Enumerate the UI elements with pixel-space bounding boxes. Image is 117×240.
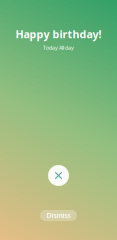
staticText: Happy birthday! xyxy=(15,27,101,41)
staticText: Today All day xyxy=(43,44,74,51)
button[interactable]: Dismiss xyxy=(48,165,69,186)
button[interactable]: Dismiss xyxy=(40,210,77,221)
staticText: Dismiss xyxy=(46,211,70,220)
